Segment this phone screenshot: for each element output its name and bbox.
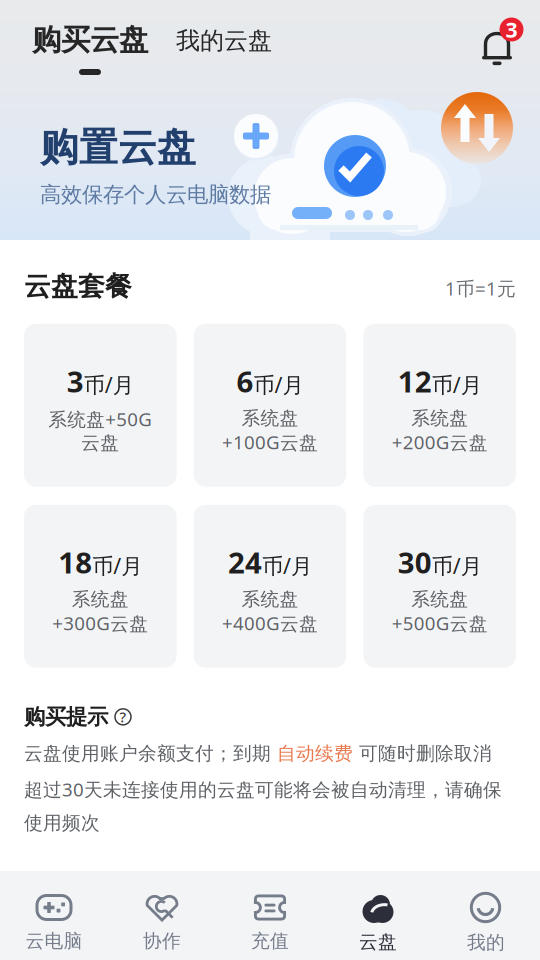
staticText: 购置云盘: [40, 124, 196, 171]
staticText: 18: [58, 543, 92, 582]
button[interactable]: 协作: [108, 893, 216, 952]
button[interactable]: 通知: [479, 18, 533, 72]
staticText: 6: [236, 362, 253, 401]
button[interactable]: 云电脑: [0, 893, 108, 952]
staticText: 1币=1元: [445, 276, 516, 301]
button[interactable]: 购买云盘: [28, 22, 152, 75]
button[interactable]: 24: [194, 505, 346, 668]
staticText: +300G云盘: [52, 611, 148, 635]
staticText: 3: [67, 362, 84, 401]
staticText: 系统盘: [411, 407, 468, 430]
button[interactable]: 充值: [216, 893, 324, 952]
staticText: 云盘使用账户余额支付；到期: [24, 742, 277, 765]
staticText: 充值: [251, 929, 289, 952]
staticText: 超过30天未连接使用的云盘可能将会被自动清理，请确保使用频次: [24, 777, 502, 835]
button[interactable]: 我的云盘: [172, 22, 276, 72]
staticText: 币/月: [84, 370, 134, 399]
staticText: +200G云盘: [392, 430, 488, 454]
staticText: 系统盘+50G: [48, 407, 152, 431]
staticText: 币/月: [432, 551, 482, 580]
staticText: 系统盘: [241, 407, 298, 430]
staticText: 购买提示: [24, 704, 108, 730]
staticText: 购买云盘: [32, 22, 148, 58]
staticText: 币/月: [432, 370, 482, 399]
staticText: 云盘: [81, 431, 119, 454]
staticText: 币/月: [262, 551, 312, 580]
button[interactable]: 6: [194, 324, 346, 487]
staticText: 云盘: [359, 930, 397, 953]
staticText: ?: [119, 707, 126, 727]
button[interactable]: 30: [363, 505, 516, 668]
staticText: 系统盘: [411, 588, 468, 611]
staticText: 系统盘: [72, 588, 129, 611]
staticText: 3: [505, 15, 517, 44]
button[interactable]: 云盘: [324, 892, 432, 953]
staticText: 币/月: [92, 551, 142, 580]
staticText: +100G云盘: [222, 430, 318, 454]
staticText: 30: [398, 543, 432, 582]
staticText: 云电脑: [25, 929, 82, 952]
staticText: 24: [228, 543, 262, 582]
staticText: 12: [398, 362, 432, 401]
staticText: 我的: [467, 931, 505, 954]
button[interactable]: 3: [24, 324, 177, 487]
staticText: 系统盘: [241, 588, 298, 611]
staticText: 币/月: [253, 370, 303, 399]
staticText: +500G云盘: [392, 611, 488, 635]
staticText: 高效保存个人云电脑数据: [40, 181, 271, 208]
button[interactable]: 18: [24, 505, 177, 668]
staticText: 云盘套餐: [24, 270, 132, 303]
button[interactable]: 我的: [432, 892, 540, 954]
staticText: 协作: [143, 929, 181, 952]
button[interactable]: 12: [363, 324, 516, 487]
staticText: 可随时删除取消: [353, 742, 492, 765]
staticText: +400G云盘: [222, 611, 318, 635]
staticText: 自动续费: [277, 742, 353, 765]
staticText: 我的云盘: [176, 26, 272, 55]
